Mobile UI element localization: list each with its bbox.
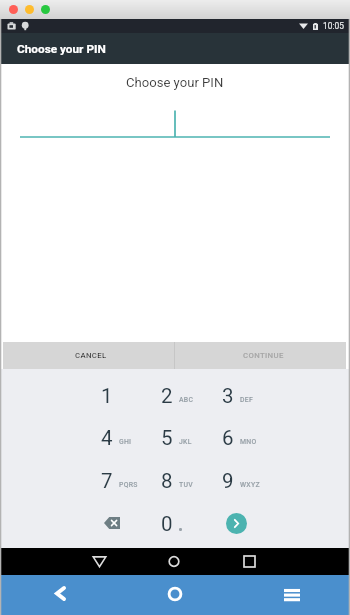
staticText: 0 bbox=[161, 512, 173, 536]
button[interactable]: Back bbox=[0, 575, 116, 615]
button[interactable]: Continue bbox=[226, 513, 247, 534]
button[interactable]: 8 bbox=[161, 460, 217, 502]
button[interactable]: 5 bbox=[161, 417, 217, 459]
button[interactable]: 3 bbox=[222, 375, 278, 417]
staticText: 2 bbox=[161, 384, 173, 408]
staticText: Choose your PIN bbox=[17, 42, 106, 56]
button[interactable]: 6 bbox=[222, 417, 278, 459]
staticText: CANCEL bbox=[75, 351, 107, 360]
staticText: 10:05 bbox=[323, 21, 344, 31]
staticText: PQRS bbox=[119, 481, 138, 489]
staticText: 1 bbox=[101, 384, 113, 408]
staticText: 4 bbox=[101, 426, 113, 450]
button[interactable]: CONTINUE bbox=[175, 342, 346, 369]
button[interactable]: 7 bbox=[101, 460, 157, 502]
button[interactable]: 4 bbox=[101, 417, 157, 459]
staticText: ABC bbox=[179, 396, 194, 404]
staticText: 5 bbox=[161, 426, 173, 450]
staticText: WXYZ bbox=[240, 481, 260, 489]
staticText: 7 bbox=[101, 469, 113, 493]
button[interactable]: 0 bbox=[161, 503, 217, 545]
staticText: JKL bbox=[179, 438, 192, 446]
staticText: 6 bbox=[222, 426, 234, 450]
button[interactable]: 9 bbox=[222, 460, 278, 502]
button[interactable]: Home bbox=[116, 575, 233, 615]
staticText: Choose your PIN bbox=[126, 75, 224, 90]
staticText: 9 bbox=[222, 469, 234, 493]
staticText: GHI bbox=[119, 438, 132, 446]
staticText: TUV bbox=[179, 481, 193, 489]
staticText: CONTINUE bbox=[243, 351, 284, 360]
button[interactable]: CANCEL bbox=[3, 342, 174, 369]
button[interactable]: 2 bbox=[161, 375, 217, 417]
staticText: 8 bbox=[161, 469, 173, 493]
staticText: 3 bbox=[222, 384, 234, 408]
button[interactable]: Delete bbox=[101, 502, 157, 544]
button[interactable]: Menu bbox=[233, 575, 350, 615]
staticText: DEF bbox=[240, 396, 253, 404]
staticText: MNO bbox=[240, 438, 257, 446]
button[interactable]: 1 bbox=[101, 375, 157, 417]
